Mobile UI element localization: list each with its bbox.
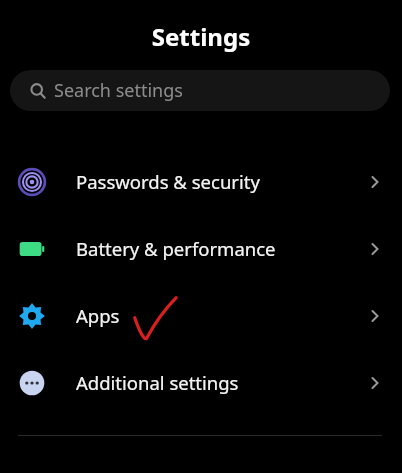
staticText: Additional settings [76,370,239,395]
button[interactable]: Additional settings [0,349,402,416]
button[interactable]: Apps [0,282,402,349]
button[interactable]: Passwords & security [0,148,402,215]
button[interactable]: Search settings [10,70,390,111]
staticText: Search settings [54,78,183,103]
staticText: Settings [0,20,402,53]
staticText: Battery & performance [76,236,276,261]
staticText: Apps [76,303,120,328]
button[interactable]: Battery & performance [0,215,402,282]
staticText: Passwords & security [76,169,260,194]
